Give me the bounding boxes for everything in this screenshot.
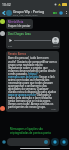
button[interactable]: Voice call xyxy=(58,10,64,16)
button[interactable]: Davi Chagas: Arau xyxy=(8,32,59,48)
button[interactable]: More options xyxy=(64,11,68,15)
staticText: Bom dia pessoal, tudo bem com vocês? Gos… xyxy=(8,56,57,108)
button[interactable]: Group photo xyxy=(6,10,12,16)
button[interactable]: Camera xyxy=(51,138,59,146)
button[interactable]: Mirela Mota xyxy=(8,20,31,28)
staticText: você, Ana, Carlos, Davi xyxy=(13,14,38,17)
staticText: Esquecí de postar xyxy=(8,24,31,28)
staticText: 10:21 xyxy=(51,108,57,111)
staticText: Davi Chagas: Arau xyxy=(8,32,31,36)
staticText: criptografadas de ponta a ponta xyxy=(10,131,51,135)
button[interactable]: Video call xyxy=(52,10,58,16)
button[interactable]: Renato Barros xyxy=(8,52,57,111)
button[interactable]: Grupo Wp : Portug xyxy=(13,9,52,17)
staticText: 10:32 xyxy=(2,2,11,7)
button[interactable]: Back xyxy=(1,10,6,15)
staticText: 10:14 xyxy=(53,45,59,48)
staticText: 0:42 xyxy=(8,45,13,48)
staticText: Renato Barros xyxy=(8,52,26,56)
staticText: Mensagens e ligações são xyxy=(10,127,43,131)
button[interactable]: Record voice message xyxy=(60,138,68,146)
button[interactable] xyxy=(7,138,50,146)
staticText: Mirela Mota xyxy=(8,20,24,24)
button[interactable]: Emoji xyxy=(1,139,7,145)
staticText: Grupo Wp : Portug xyxy=(13,9,45,14)
